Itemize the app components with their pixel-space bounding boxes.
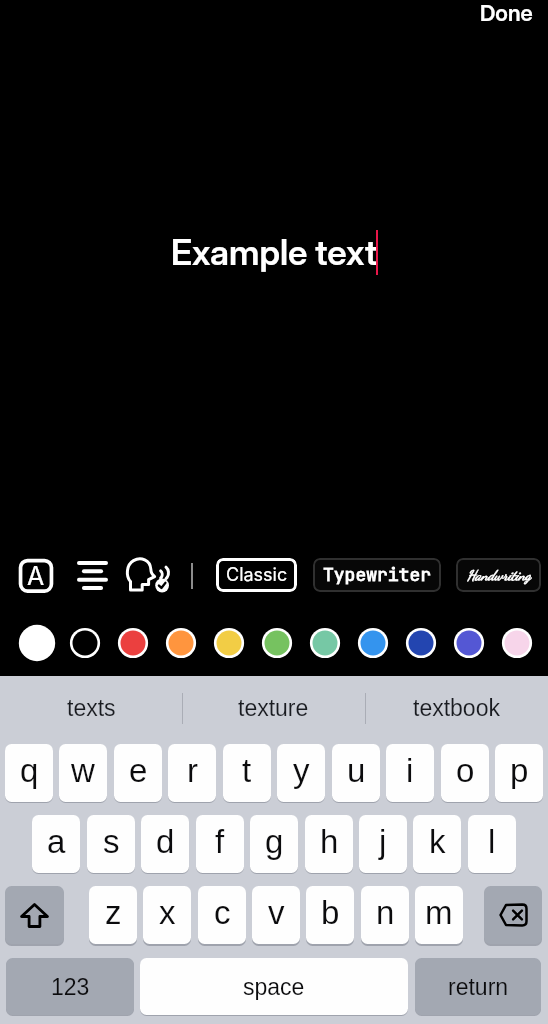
button[interactable]: t: [223, 744, 271, 802]
button[interactable]: e: [114, 744, 162, 802]
button[interactable]: b: [306, 886, 354, 944]
button[interactable]: Classic: [216, 558, 297, 592]
staticText: m: [425, 894, 453, 931]
staticText: x: [159, 894, 176, 931]
button[interactable]: Read aloud: [127, 557, 171, 593]
button[interactable]: textbook: [365, 681, 548, 735]
staticText: y: [293, 752, 310, 789]
staticText: l: [488, 823, 496, 860]
staticText: h: [320, 823, 339, 860]
button[interactable]: y: [277, 744, 325, 802]
staticText: g: [265, 823, 284, 860]
button[interactable]: Colour 10: [449, 624, 489, 662]
staticText: c: [214, 894, 231, 931]
button[interactable]: m: [415, 886, 463, 944]
button[interactable]: Colour 2: [65, 624, 105, 662]
button[interactable]: q: [5, 744, 53, 802]
staticText: d: [156, 823, 175, 860]
staticText: w: [71, 752, 95, 789]
button[interactable]: Colour 3: [113, 624, 153, 662]
button[interactable]: Colour 4: [161, 624, 201, 662]
button[interactable]: k: [413, 815, 461, 873]
button[interactable]: Colour 7: [305, 624, 345, 662]
button[interactable]: g: [250, 815, 298, 873]
staticText: t: [242, 752, 252, 789]
button[interactable]: Colour 11: [497, 624, 537, 662]
staticText: k: [429, 823, 446, 860]
staticText: texts: [67, 695, 116, 721]
staticText: return: [448, 974, 509, 1000]
button[interactable]: 123: [6, 958, 134, 1015]
button[interactable]: return: [415, 958, 541, 1015]
button[interactable]: o: [441, 744, 489, 802]
staticText: Classic: [226, 564, 288, 586]
staticText: r: [187, 752, 198, 789]
button[interactable]: a: [32, 815, 80, 873]
button[interactable]: Colour 6: [257, 624, 297, 662]
button[interactable]: Colour 5: [209, 624, 249, 662]
staticText: u: [347, 752, 366, 789]
button[interactable]: u: [332, 744, 380, 802]
button[interactable]: i: [386, 744, 434, 802]
button[interactable]: j: [359, 815, 407, 873]
staticText: p: [510, 752, 529, 789]
staticText: n: [376, 894, 395, 931]
button[interactable]: v: [252, 886, 300, 944]
staticText: z: [105, 894, 122, 931]
button[interactable]: Colour 1: [17, 624, 57, 662]
staticText: v: [268, 894, 285, 931]
staticText: texture: [238, 695, 309, 721]
button[interactable]: r: [168, 744, 216, 802]
staticText: s: [103, 823, 120, 860]
button[interactable]: Handwriting: [456, 558, 541, 592]
button[interactable]: h: [305, 815, 353, 873]
button[interactable]: Text style: [14, 555, 58, 597]
button[interactable]: z: [89, 886, 137, 944]
staticText: a: [47, 823, 66, 860]
staticText: Handwriting: [467, 567, 531, 584]
button[interactable]: Colour 8: [353, 624, 393, 662]
staticText: A: [27, 561, 45, 591]
staticText: j: [379, 823, 387, 860]
button[interactable]: f: [196, 815, 244, 873]
staticText: textbook: [413, 695, 500, 721]
staticText: Example text: [171, 231, 378, 273]
staticText: q: [20, 752, 39, 789]
button[interactable]: Colour 9: [401, 624, 441, 662]
button[interactable]: s: [87, 815, 135, 873]
button[interactable]: texture: [182, 681, 365, 735]
staticText: Done: [480, 0, 533, 27]
button[interactable]: l: [468, 815, 516, 873]
button[interactable]: Shift: [5, 886, 64, 944]
staticText: e: [129, 752, 148, 789]
button[interactable]: Alignment: [70, 556, 114, 596]
button[interactable]: x: [143, 886, 191, 944]
staticText: space: [243, 974, 305, 1000]
button[interactable]: n: [361, 886, 409, 944]
button[interactable]: d: [141, 815, 189, 873]
button[interactable]: Typewriter: [313, 558, 441, 592]
button[interactable]: p: [495, 744, 543, 802]
staticText: i: [406, 752, 414, 789]
button[interactable]: space: [140, 958, 408, 1015]
button[interactable]: w: [59, 744, 107, 802]
button[interactable]: c: [198, 886, 246, 944]
staticText: Typewriter: [323, 563, 431, 587]
button[interactable]: Backspace: [484, 886, 542, 944]
staticText: 123: [51, 974, 90, 1000]
staticText: b: [321, 894, 340, 931]
staticText: f: [215, 823, 225, 860]
staticText: o: [456, 752, 475, 789]
button[interactable]: texts: [0, 681, 182, 735]
button[interactable]: Done: [466, 0, 546, 28]
